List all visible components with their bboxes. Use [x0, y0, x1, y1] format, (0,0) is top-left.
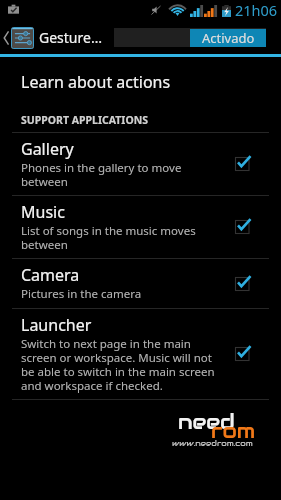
- staticText: Learn about actions: [21, 71, 171, 93]
- staticText: need: [178, 408, 235, 435]
- staticText: www.needrom.com: [172, 438, 253, 448]
- staticText: Phones in the gallery to move between: [21, 160, 217, 189]
- button[interactable]: Camera: [0, 259, 281, 308]
- other: Navigate up: [3, 30, 9, 46]
- staticText: Gesture…: [39, 28, 102, 47]
- staticText: List of songs in the music moves between: [21, 223, 217, 252]
- button[interactable]: Activado: [114, 28, 266, 47]
- staticText: Switch to next page in the main screen o…: [21, 336, 217, 393]
- staticText: Music: [21, 201, 65, 223]
- staticText: Gallery: [21, 138, 74, 160]
- button[interactable]: Learn about actions: [0, 57, 281, 113]
- button[interactable]: Gallery: [0, 133, 281, 195]
- button[interactable]: Launcher: [0, 309, 281, 399]
- staticText: Activado: [202, 29, 255, 47]
- button[interactable]: Music: [0, 196, 281, 258]
- staticText: SUPPORT APPLICATIONS: [21, 113, 149, 127]
- staticText: 21h06: [235, 0, 278, 20]
- staticText: Pictures in the camera: [21, 286, 142, 302]
- staticText: Camera: [21, 264, 80, 286]
- button[interactable]: Navigate up: [0, 21, 102, 54]
- staticText: rom: [211, 417, 256, 444]
- staticText: Launcher: [21, 314, 92, 336]
